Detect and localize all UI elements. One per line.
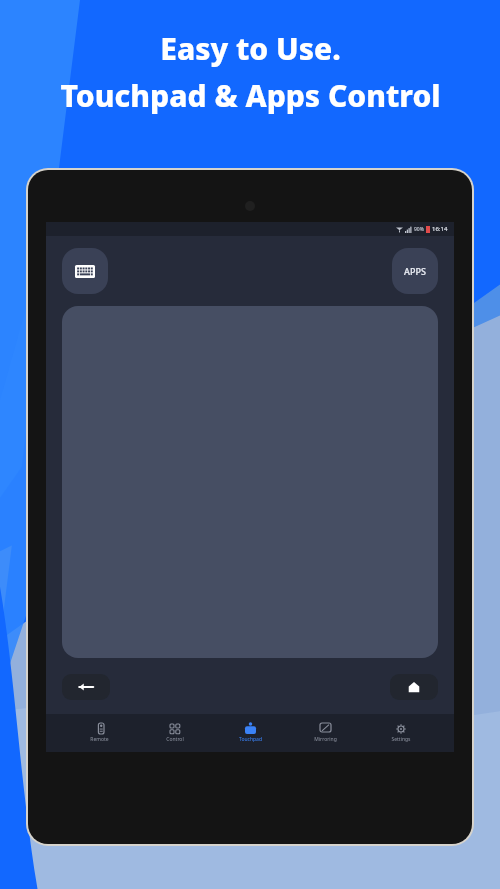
staticText: Control bbox=[166, 736, 184, 743]
staticText: 90% bbox=[414, 226, 424, 233]
staticText: Easy to Use. bbox=[160, 28, 341, 69]
button[interactable]: Home bbox=[390, 674, 438, 700]
button[interactable]: Remote bbox=[71, 714, 127, 752]
button[interactable]: Settings bbox=[373, 714, 429, 752]
button[interactable]: Keyboard bbox=[62, 248, 108, 294]
button[interactable]: APPS bbox=[392, 248, 438, 294]
button[interactable]: Touchpad bbox=[222, 714, 278, 752]
staticText: Settings bbox=[391, 736, 411, 743]
button[interactable]: Back bbox=[62, 674, 110, 700]
button[interactable]: Mirroring bbox=[297, 714, 353, 752]
staticText: APPS bbox=[404, 265, 426, 277]
button[interactable]: Control bbox=[147, 714, 203, 752]
staticText: 16:14 bbox=[432, 225, 448, 233]
staticText: Remote bbox=[90, 736, 109, 743]
staticText: Touchpad & Apps Control bbox=[60, 75, 441, 116]
staticText: Touchpad bbox=[239, 736, 262, 743]
staticText: Mirroring bbox=[314, 736, 337, 743]
